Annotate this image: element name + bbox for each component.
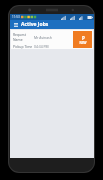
staticText: NEW: [79, 41, 87, 45]
button[interactable]: P: [73, 31, 92, 48]
staticText: 04:34 PM: [34, 44, 49, 49]
staticText: P: [82, 35, 85, 41]
button[interactable]: Request Name: [11, 30, 93, 49]
staticText: Mr Avinash: [34, 35, 52, 40]
staticText: Active Jobs: [21, 21, 49, 28]
staticText: Request Name: [13, 32, 34, 42]
staticText: Pickup Time: [13, 44, 34, 49]
button[interactable]: Open navigation drawer: [12, 21, 19, 28]
staticText: 11:53: [12, 15, 20, 19]
